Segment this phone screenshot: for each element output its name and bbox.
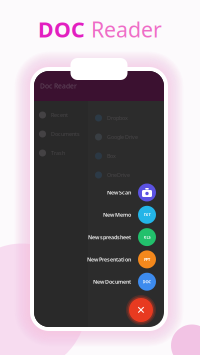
button[interactable]: Trash	[39, 145, 88, 161]
staticText: Documents	[51, 130, 80, 138]
staticText: New Presentation	[87, 256, 131, 263]
staticText: DOC	[142, 279, 151, 284]
button[interactable]: New Presentation	[34, 250, 156, 268]
button[interactable]: Google Drive	[95, 129, 143, 145]
staticText: New spreadsheet	[88, 234, 131, 241]
staticText: DOC	[38, 15, 85, 43]
button[interactable]: Recent	[39, 107, 88, 123]
button[interactable]: Dropbox	[95, 110, 143, 126]
staticText: Doc Reader	[40, 82, 77, 90]
button[interactable]: Close menu	[34, 295, 156, 325]
button[interactable]: Documents	[39, 126, 88, 142]
button[interactable]: New Scan	[34, 183, 156, 201]
staticText: TXT	[143, 212, 150, 217]
staticText: Trash	[51, 149, 65, 157]
staticText: New Memo	[103, 211, 131, 218]
staticText: Recent	[51, 111, 68, 119]
staticText: ✕	[136, 304, 145, 316]
staticText: Reader	[85, 15, 162, 43]
staticText: Box	[107, 152, 116, 160]
button[interactable]: New Document	[34, 273, 156, 291]
staticText: New Scan	[107, 189, 131, 196]
staticText: New Document	[93, 278, 131, 285]
staticText: PPT	[144, 257, 150, 262]
button[interactable]: OneDrive	[95, 167, 143, 183]
staticText: Google Drive	[107, 133, 138, 141]
staticText: XLS	[143, 234, 150, 240]
staticText: OneDrive	[107, 171, 130, 179]
button[interactable]: Box	[95, 148, 143, 164]
button[interactable]: New spreadsheet	[34, 228, 156, 246]
button[interactable]: New Memo	[34, 206, 156, 224]
staticText: Dropbox	[107, 114, 128, 122]
